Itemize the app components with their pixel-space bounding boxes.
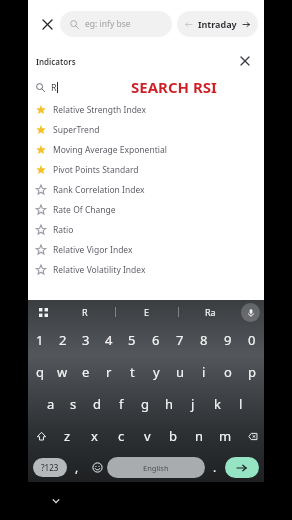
button[interactable]: u (168, 356, 192, 388)
staticText: , (75, 459, 79, 475)
button[interactable]: h (157, 388, 181, 420)
button[interactable]: y (144, 356, 168, 388)
button[interactable]: R (54, 300, 115, 324)
staticText: Rank Correlation Index (53, 184, 145, 196)
staticText: Ra (205, 306, 216, 318)
button[interactable]: Hide keyboard (48, 493, 64, 509)
staticText: p (248, 363, 256, 381)
button[interactable]: e (74, 356, 97, 388)
button[interactable]: c (108, 420, 134, 452)
button[interactable]: d (85, 388, 109, 420)
button[interactable]: k (205, 388, 229, 420)
staticText: 8 (200, 331, 208, 349)
button[interactable]: Keyboard options (32, 301, 54, 323)
staticText: c (118, 427, 125, 445)
button[interactable]: Ra (179, 300, 241, 324)
button[interactable]: E (116, 300, 178, 324)
button[interactable]: j (181, 388, 205, 420)
staticText: x (91, 427, 98, 445)
staticText: Pivot Points Standard (53, 164, 139, 176)
staticText: v (144, 427, 151, 445)
button[interactable]: 9 (216, 324, 240, 356)
button[interactable]: i (192, 356, 216, 388)
button[interactable]: Emoji (87, 452, 107, 482)
staticText: r (106, 363, 112, 381)
button[interactable]: o (216, 356, 240, 388)
button[interactable]: Voice input (241, 303, 260, 322)
staticText: Moving Average Exponential (53, 144, 167, 156)
button[interactable]: Shift (28, 420, 54, 452)
button[interactable]: b (160, 420, 186, 452)
button[interactable]: Relative Strength Index (28, 100, 264, 120)
button[interactable]: q (28, 356, 51, 388)
staticText: b (169, 427, 177, 445)
staticText: R (51, 81, 57, 93)
button[interactable]: Relative Volatility Index (28, 260, 264, 280)
button[interactable]: , (67, 452, 87, 482)
button[interactable]: 8 (192, 324, 216, 356)
staticText: s (70, 395, 77, 413)
button[interactable]: x (81, 420, 108, 452)
staticText: q (36, 363, 44, 381)
button[interactable]: m (212, 420, 238, 452)
button[interactable]: Moving Average Exponential (28, 140, 264, 160)
button[interactable]: Rank Correlation Index (28, 180, 264, 200)
button[interactable]: English (107, 457, 205, 478)
button[interactable]: Close (34, 11, 60, 37)
staticText: m (219, 427, 232, 445)
button[interactable]: n (186, 420, 212, 452)
staticText: d (93, 395, 101, 413)
button[interactable]: f (109, 388, 133, 420)
button[interactable]: t (120, 356, 144, 388)
button[interactable]: ?123 (33, 458, 67, 477)
staticText: e (82, 363, 90, 381)
button[interactable]: SuperTrend (28, 120, 264, 140)
button[interactable]: Rate Of Change (28, 200, 264, 220)
button[interactable]: 7 (168, 324, 192, 356)
button[interactable]: l (229, 388, 253, 420)
button[interactable]: . (205, 452, 225, 482)
button[interactable]: 4 (97, 324, 120, 356)
staticText: 1 (36, 331, 44, 349)
staticText: Ratio (53, 224, 74, 236)
staticText: a (47, 395, 55, 413)
button[interactable]: R (36, 74, 264, 100)
button[interactable]: w (51, 356, 74, 388)
button[interactable]: s (62, 388, 85, 420)
staticText: 7 (176, 331, 184, 349)
staticText: 2 (59, 331, 67, 349)
staticText: Rate Of Change (53, 204, 116, 216)
button[interactable]: v (134, 420, 160, 452)
staticText: Relative Strength Index (53, 104, 146, 116)
button[interactable]: z (54, 420, 81, 452)
button[interactable]: r (97, 356, 120, 388)
staticText: j (191, 395, 195, 413)
button[interactable]: a (39, 388, 62, 420)
staticText: 3 (82, 331, 90, 349)
staticText: 5 (128, 331, 136, 349)
button[interactable]: 3 (74, 324, 97, 356)
button[interactable]: 1 (28, 324, 51, 356)
staticText: f (119, 395, 124, 413)
button[interactable]: Intraday (177, 11, 258, 37)
button[interactable]: 5 (120, 324, 144, 356)
staticText: R (82, 306, 88, 318)
button[interactable]: Enter (225, 457, 259, 478)
button[interactable]: 2 (51, 324, 74, 356)
button[interactable]: Relative Vigor Index (28, 240, 264, 260)
staticText: Intraday (198, 18, 237, 30)
staticText: E (144, 306, 150, 318)
staticText: h (165, 395, 174, 413)
staticText: 4 (105, 331, 113, 349)
button[interactable]: Pivot Points Standard (28, 160, 264, 180)
button[interactable]: p (240, 356, 264, 388)
button[interactable]: 6 (144, 324, 168, 356)
staticText: Relative Vigor Index (53, 244, 133, 256)
button[interactable]: Close indicators (234, 50, 256, 72)
button[interactable]: g (133, 388, 157, 420)
staticText: n (195, 427, 204, 445)
button[interactable]: eg: infy bse (60, 11, 172, 37)
button[interactable]: Ratio (28, 220, 264, 240)
button[interactable]: 0 (240, 324, 264, 356)
button[interactable]: Backspace (238, 420, 264, 452)
